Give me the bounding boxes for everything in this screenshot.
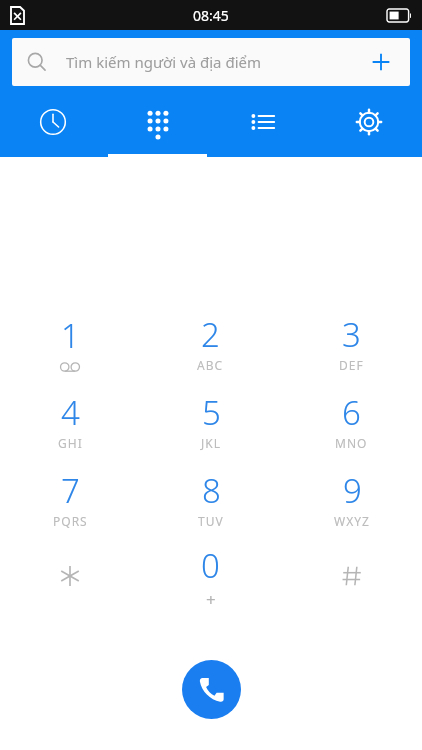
- button[interactable]: 2: [140, 309, 281, 375]
- button[interactable]: Contacts: [210, 95, 316, 157]
- button[interactable]: Recents: [0, 95, 105, 157]
- staticText: +: [206, 588, 216, 609]
- staticText: 9: [343, 468, 362, 513]
- button[interactable]: 6: [281, 387, 422, 453]
- staticText: 6: [342, 390, 361, 435]
- button[interactable]: 4: [0, 387, 140, 453]
- staticText: ABC: [197, 357, 224, 373]
- staticText: 4: [61, 390, 80, 435]
- button[interactable]: Dialpad: [105, 95, 210, 157]
- staticText: MNO: [335, 435, 368, 451]
- button[interactable]: Settings: [316, 95, 422, 157]
- staticText: 7: [61, 468, 80, 513]
- staticText: 1: [61, 313, 80, 358]
- button[interactable]: 0: [140, 543, 281, 609]
- button[interactable]: 3: [281, 309, 422, 375]
- staticText: 08:45: [193, 6, 229, 25]
- staticText: PQRS: [53, 513, 88, 529]
- button[interactable]: Star: [0, 543, 140, 609]
- button[interactable]: 5: [140, 387, 281, 453]
- button[interactable]: Call: [182, 660, 241, 719]
- staticText: 8: [202, 468, 221, 513]
- staticText: TUV: [198, 513, 224, 529]
- staticText: 3: [342, 312, 361, 357]
- staticText: Tìm kiếm người và địa điểm: [66, 52, 366, 72]
- staticText: DEF: [339, 357, 364, 373]
- button[interactable]: Tìm kiếm người và địa điểm: [12, 38, 410, 86]
- staticText: WXYZ: [334, 513, 370, 529]
- staticText: JKL: [201, 435, 221, 451]
- button[interactable]: 7: [0, 465, 140, 531]
- staticText: 5: [202, 390, 221, 435]
- button[interactable]: Add contact: [366, 47, 396, 77]
- staticText: 0: [201, 543, 220, 588]
- button[interactable]: Pound: [281, 543, 422, 609]
- button[interactable]: 1: [0, 309, 140, 375]
- button[interactable]: 8: [140, 465, 281, 531]
- button[interactable]: 9: [281, 465, 422, 531]
- staticText: GHI: [58, 435, 83, 451]
- staticText: 2: [201, 312, 220, 357]
